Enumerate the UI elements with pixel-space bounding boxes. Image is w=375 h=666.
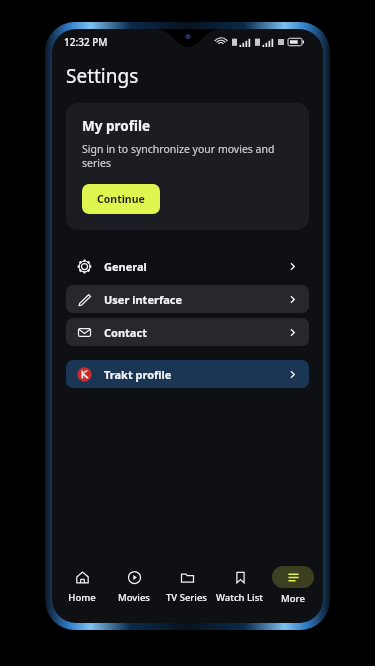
button[interactable]: User interface (66, 285, 309, 313)
staticText: My profile (82, 117, 151, 135)
staticText: Sign in to synchronize your movies and s… (82, 142, 293, 170)
staticText: Home (68, 591, 96, 604)
button[interactable]: Contact (66, 318, 309, 346)
staticText: TV Series (166, 591, 207, 604)
staticText: User interface (104, 292, 182, 307)
button[interactable]: General (66, 252, 309, 280)
button[interactable]: Trakt profile (66, 360, 309, 388)
button[interactable]: More (266, 561, 319, 609)
staticText: Continue (97, 192, 145, 206)
staticText: 12:32 PM (64, 35, 108, 49)
staticText: Contact (104, 325, 147, 340)
staticText: Movies (118, 591, 150, 604)
staticText: Trakt profile (104, 367, 172, 382)
staticText: Settings (66, 63, 139, 89)
button[interactable]: Movies (108, 561, 160, 609)
staticText: General (104, 259, 147, 274)
button[interactable]: My profile (66, 103, 309, 230)
button[interactable]: Home (56, 561, 108, 609)
button[interactable]: Watch List (213, 561, 266, 609)
button[interactable]: Continue (82, 184, 160, 214)
button[interactable]: TV Series (160, 561, 213, 609)
staticText: More (281, 592, 305, 605)
staticText: Watch List (216, 591, 263, 604)
